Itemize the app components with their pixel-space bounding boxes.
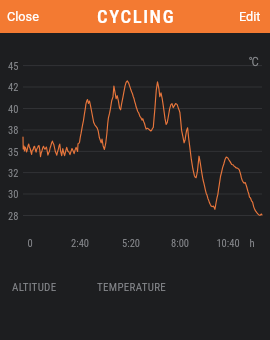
staticText: 28 xyxy=(8,210,19,222)
staticText: 38 xyxy=(8,124,19,136)
staticText: TEMPERATURE xyxy=(97,281,167,294)
staticText: 5:20 xyxy=(116,237,146,249)
button[interactable]: TEMPERATURE xyxy=(89,275,175,300)
staticText: 40 xyxy=(8,103,19,115)
button[interactable]: ALTITUDE xyxy=(4,275,65,300)
staticText: ℃ xyxy=(249,54,259,69)
staticText: Edit xyxy=(239,9,261,24)
staticText: 32 xyxy=(8,167,19,179)
staticText: 0 xyxy=(15,237,45,249)
staticText: Close xyxy=(7,9,39,24)
staticText: h xyxy=(237,237,267,249)
staticText: 45 xyxy=(8,60,19,72)
staticText: 10:40 xyxy=(213,237,243,249)
staticText: 8:00 xyxy=(165,237,195,249)
button[interactable]: Close xyxy=(0,3,49,30)
staticText: 42 xyxy=(8,81,19,93)
button[interactable]: Edit xyxy=(229,3,270,30)
staticText: 30 xyxy=(8,188,19,200)
staticText: CYCLING xyxy=(97,6,176,28)
staticText: ALTITUDE xyxy=(12,281,57,294)
staticText: 2:40 xyxy=(65,237,95,249)
staticText: 35 xyxy=(8,146,19,158)
